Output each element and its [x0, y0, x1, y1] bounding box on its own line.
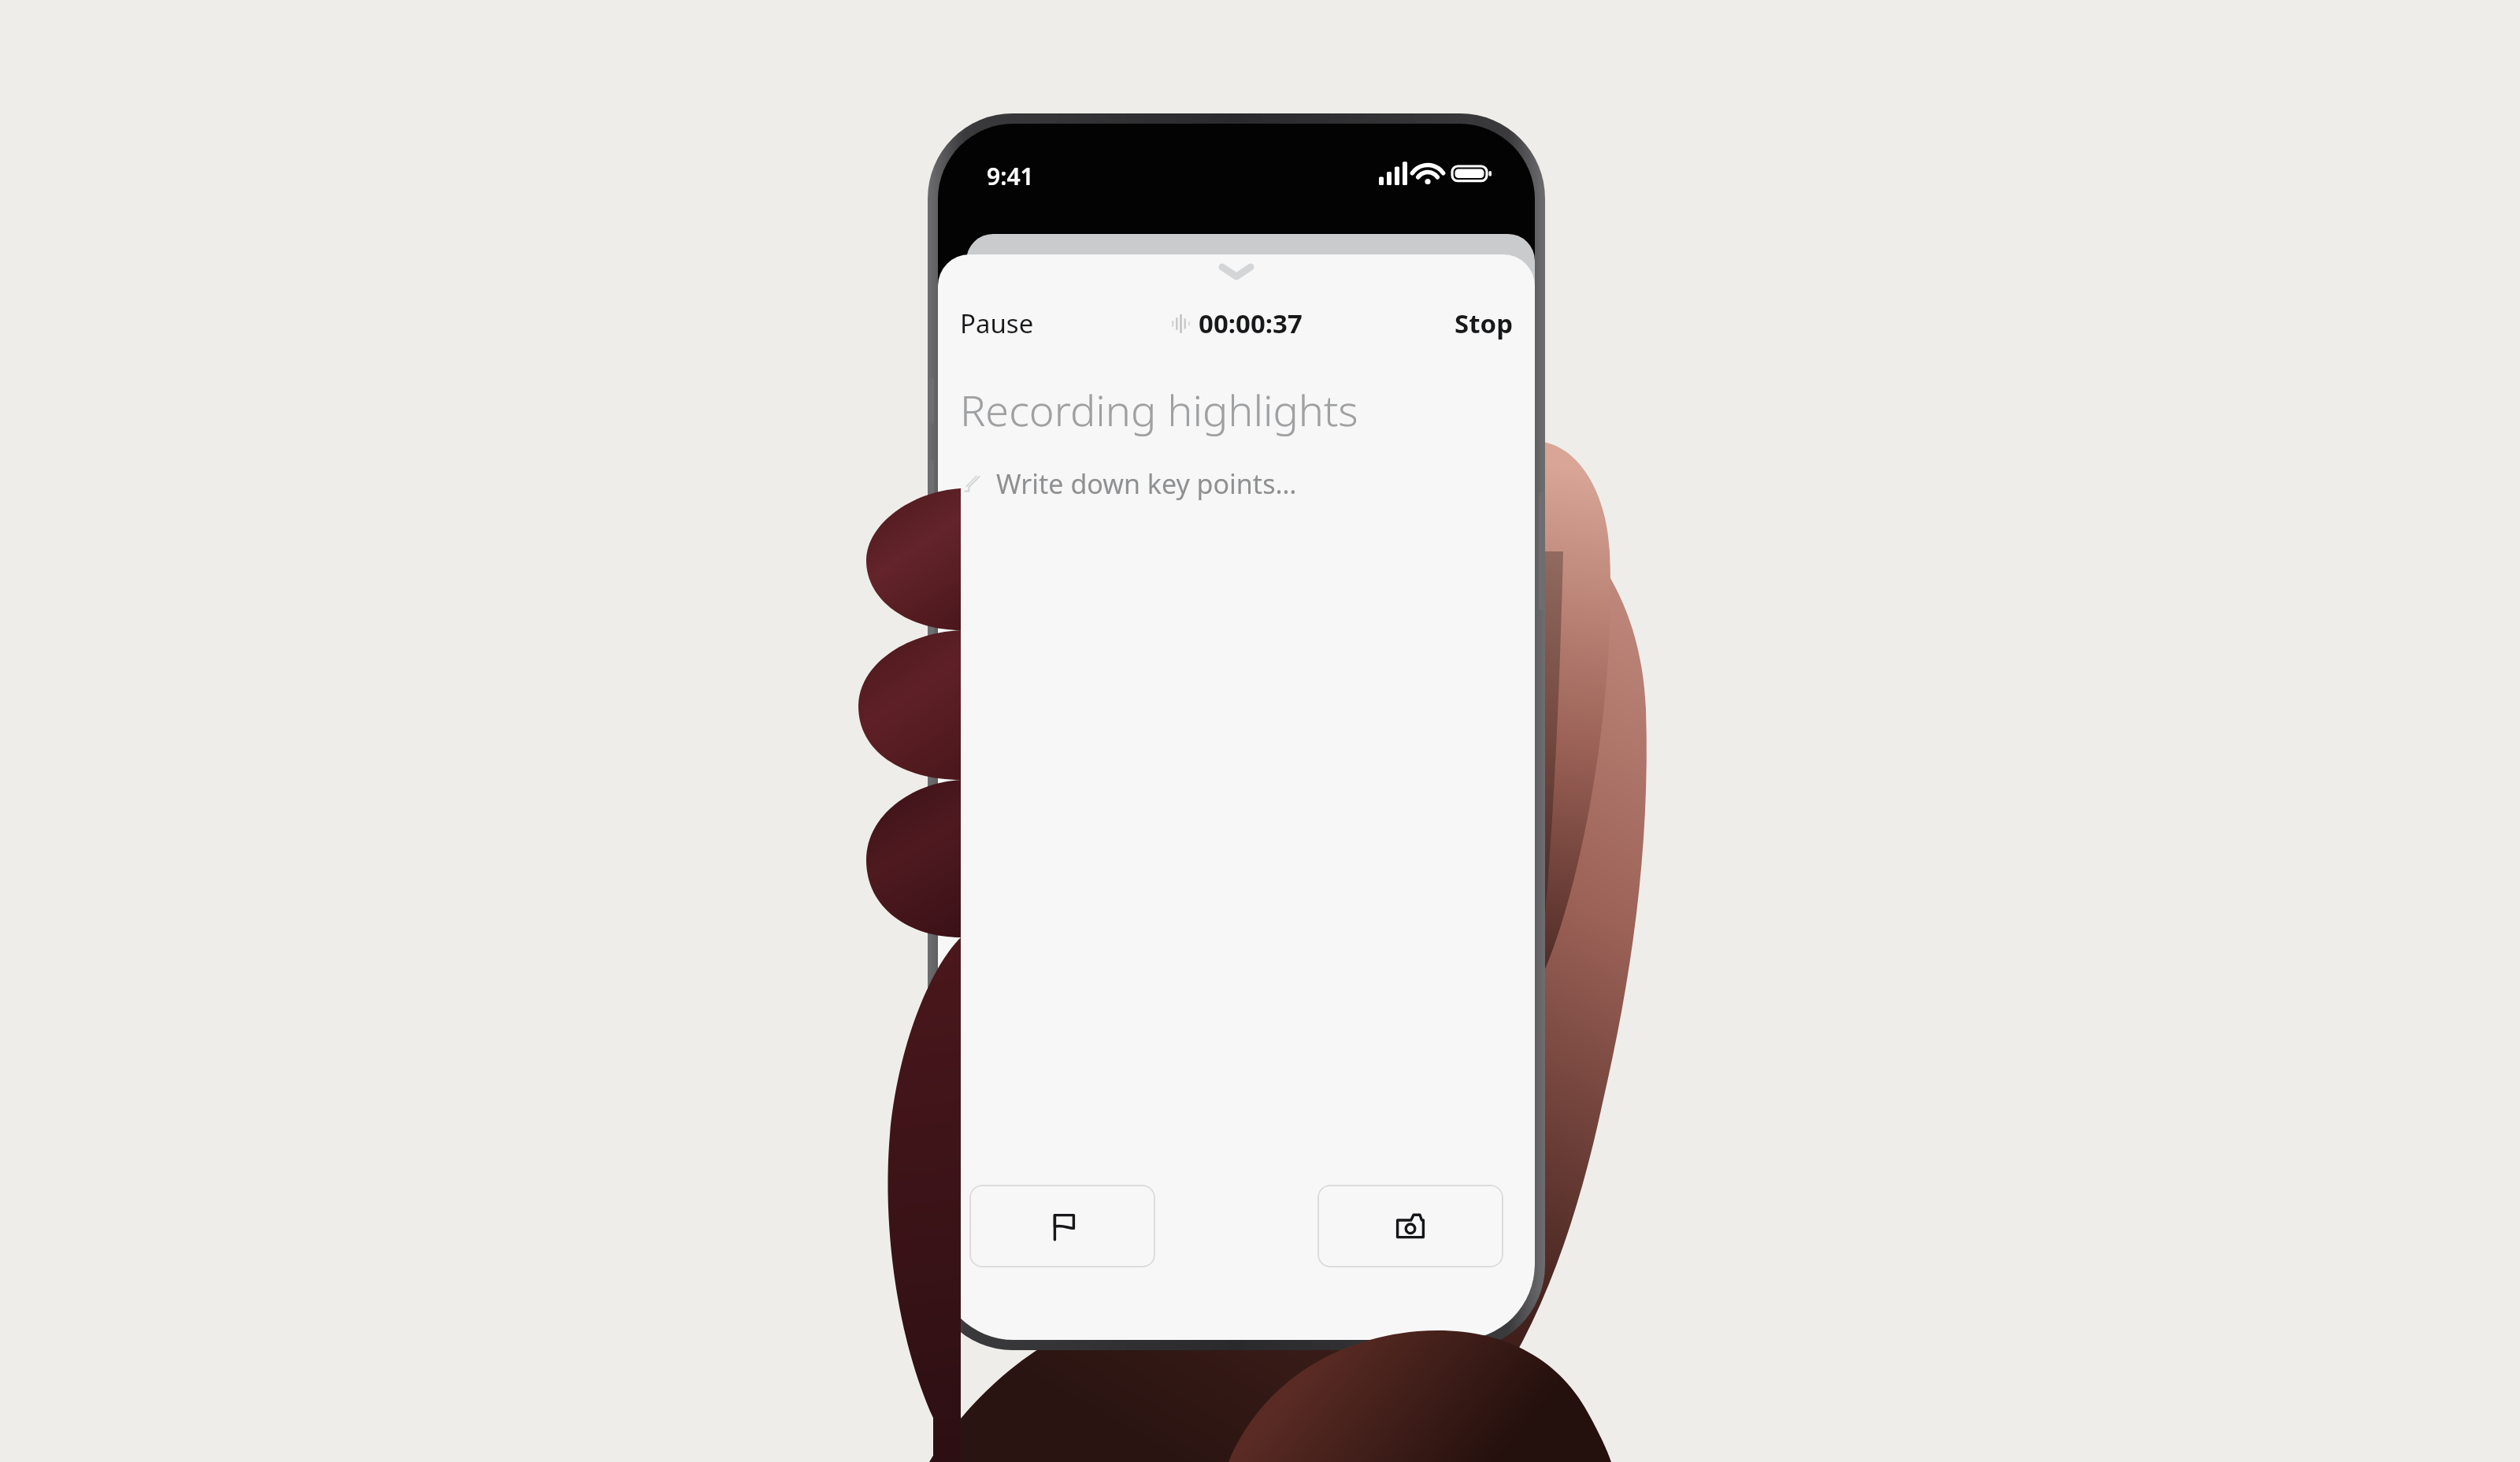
staticText: Write down key points… — [996, 466, 1297, 502]
staticText: Recording highlights — [960, 380, 1358, 439]
button[interactable]: Take photo — [1317, 1185, 1503, 1267]
staticText: 00:00:37 — [1199, 306, 1303, 341]
button[interactable]: Pause — [952, 299, 1042, 347]
staticText: Stop — [1455, 306, 1513, 341]
button[interactable]: Recording highlights — [938, 379, 1535, 440]
button[interactable]: Add flag marker — [969, 1185, 1155, 1267]
button[interactable]: Stop — [1447, 299, 1521, 347]
button[interactable]: Write down key points… — [938, 461, 1535, 507]
staticText: 9:41 — [987, 160, 1034, 192]
button[interactable]: Collapse sheet — [938, 254, 1535, 289]
staticText: Pause — [960, 306, 1034, 341]
